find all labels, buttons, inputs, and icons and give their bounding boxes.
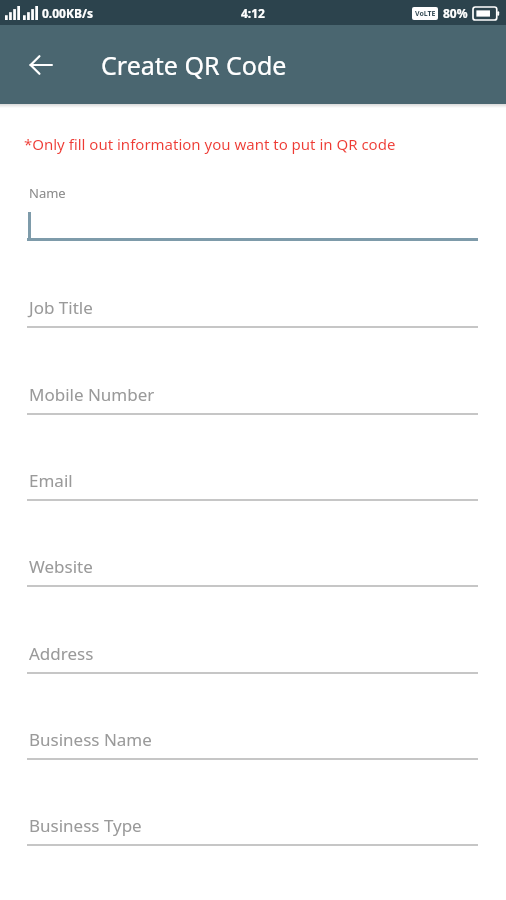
button[interactable]: Business Name <box>0 728 506 760</box>
staticText: Name <box>29 184 66 202</box>
button[interactable]: Mobile Number <box>0 383 506 415</box>
staticText: Business Name <box>29 728 152 751</box>
staticText: Mobile Number <box>29 383 155 406</box>
button[interactable]: Job Title <box>0 296 506 328</box>
staticText: 80% <box>443 5 468 21</box>
button[interactable]: Address <box>0 642 506 674</box>
button[interactable]: Email <box>0 469 506 501</box>
staticText: 0.00KB/s <box>42 5 93 21</box>
button[interactable]: Back <box>18 42 64 88</box>
staticText: Job Title <box>29 296 93 319</box>
staticText: Email <box>29 469 73 492</box>
staticText: Address <box>29 642 94 665</box>
staticText: Create QR Code <box>101 48 287 82</box>
button[interactable]: Business Type <box>0 814 506 846</box>
staticText: Website <box>29 555 93 578</box>
button[interactable]: Website <box>0 555 506 587</box>
button[interactable]: Name <box>0 184 506 241</box>
staticText: 4:12 <box>241 5 265 21</box>
staticText: Business Type <box>29 814 142 837</box>
staticText: *Only fill out information you want to p… <box>24 134 396 154</box>
staticText: VoLTE <box>415 9 436 19</box>
